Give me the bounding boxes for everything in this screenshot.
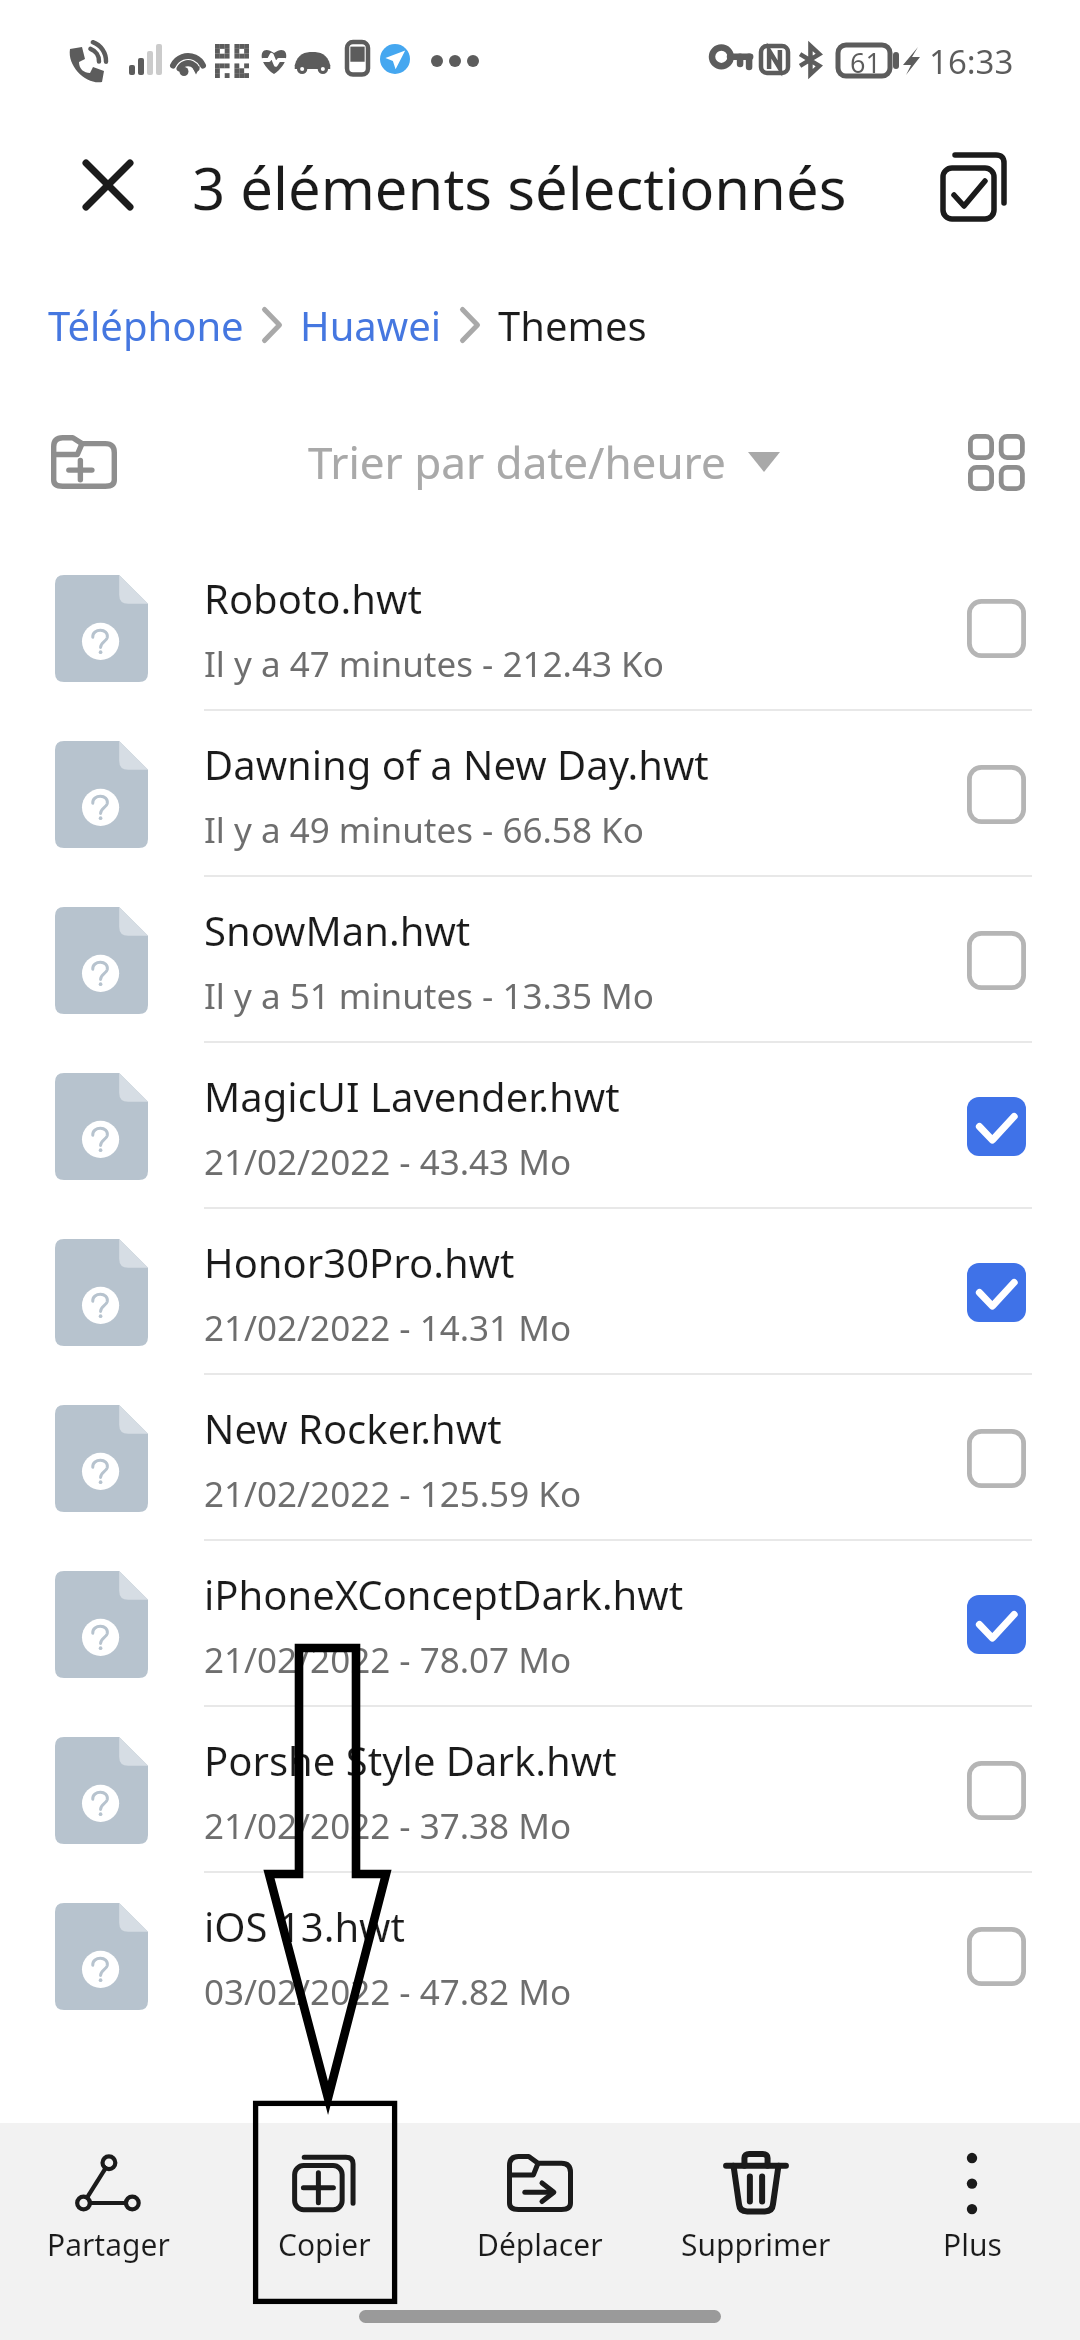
staticText: 3 éléments sélectionnés [192,148,847,227]
button[interactable]: Sélectionné [952,1580,1040,1668]
staticText: Déplacer [477,2224,603,2265]
staticText: Plus [943,2224,1002,2265]
staticText: Themes [498,298,647,352]
staticText: Supprimer [681,2224,831,2265]
button[interactable]: Huawei [300,298,442,352]
staticText: Partager [47,2224,170,2265]
staticText: iOS 13.hwt [204,1899,405,1953]
button[interactable]: Trier par date/heure [308,406,780,518]
staticText: 21/02/2022 - 37.38 Mo [204,1802,572,1850]
button[interactable]: iPhoneXConceptDark.hwt [0,1541,1080,1707]
button[interactable]: Honor30Pro.hwt [0,1209,1080,1375]
staticText: Copier [278,2224,371,2265]
button[interactable]: Dawning of a New Day.hwt [0,711,1080,877]
button[interactable]: Copier [216,2123,432,2283]
staticText: 16:33 [929,39,1014,84]
staticText: Roboto.hwt [204,571,422,625]
staticText: Il y a 51 minutes - 13.35 Mo [204,972,654,1020]
button[interactable]: Déplacer [432,2123,648,2283]
button[interactable]: Partager [0,2123,216,2283]
button[interactable]: iOS 13.hwt [0,1873,1080,2039]
staticText: SnowMan.hwt [204,903,471,957]
button[interactable]: Fermer [58,135,158,235]
button[interactable]: Non sélectionné [952,1912,1040,2000]
staticText: MagicUI Lavender.hwt [204,1069,620,1123]
button[interactable]: New Rocker.hwt [0,1375,1080,1541]
button[interactable]: Supprimer [648,2123,864,2283]
button[interactable]: Nouveau dossier [24,406,144,518]
staticText: 21/02/2022 - 14.31 Mo [204,1304,572,1352]
staticText: Trier par date/heure [308,432,726,492]
staticText: Il y a 47 minutes - 212.43 Ko [204,640,664,688]
button[interactable]: Sélectionné [952,1248,1040,1336]
button[interactable]: Vue grille [936,406,1056,518]
button[interactable]: MagicUI Lavender.hwt [0,1043,1080,1209]
button[interactable]: Sélectionné [952,1082,1040,1170]
staticText: 61 [850,44,881,81]
button[interactable]: Non sélectionné [952,1746,1040,1834]
button[interactable]: Roboto.hwt [0,545,1080,711]
button[interactable]: Non sélectionné [952,750,1040,838]
staticText: 03/02/2022 - 47.82 Mo [204,1968,572,2016]
button[interactable]: Porshe Style Dark.hwt [0,1707,1080,1873]
button[interactable]: Non sélectionné [952,584,1040,672]
staticText: 21/02/2022 - 125.59 Ko [204,1470,582,1518]
staticText: 21/02/2022 - 43.43 Mo [204,1138,572,1186]
staticText: New Rocker.hwt [204,1401,502,1455]
button[interactable]: Tout sélectionner [926,133,1026,233]
staticText: iPhoneXConceptDark.hwt [204,1567,684,1621]
staticText: Honor30Pro.hwt [204,1235,515,1289]
staticText: Dawning of a New Day.hwt [204,737,709,791]
staticText: 21/02/2022 - 78.07 Mo [204,1636,572,1684]
staticText: Il y a 49 minutes - 66.58 Ko [204,806,644,854]
button[interactable]: Plus [864,2123,1080,2283]
button[interactable]: Non sélectionné [952,916,1040,1004]
button[interactable]: Téléphone [48,298,244,352]
staticText: Porshe Style Dark.hwt [204,1733,617,1787]
button[interactable]: Non sélectionné [952,1414,1040,1502]
button[interactable]: SnowMan.hwt [0,877,1080,1043]
